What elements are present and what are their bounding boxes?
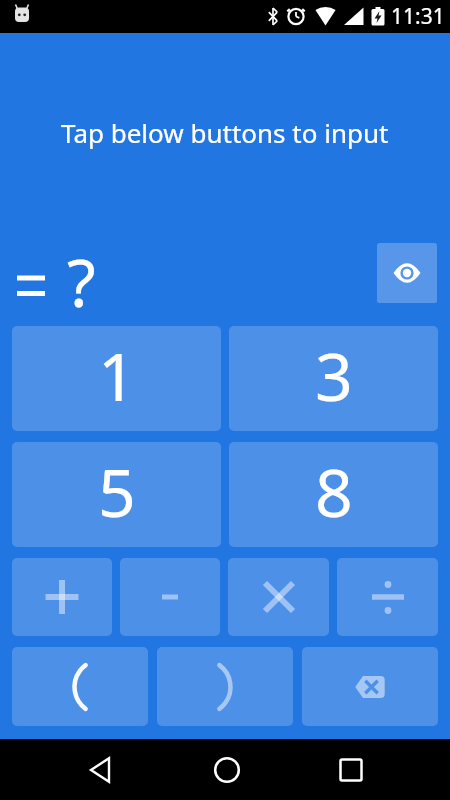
- button[interactable]: [12, 558, 112, 636]
- staticText: 11:31: [391, 2, 445, 31]
- button[interactable]: [120, 558, 220, 636]
- button[interactable]: [302, 647, 438, 726]
- button[interactable]: [337, 558, 438, 636]
- staticText: 8: [315, 446, 353, 536]
- button[interactable]: [157, 647, 293, 726]
- button[interactable]: [76, 746, 124, 794]
- button[interactable]: 8: [229, 442, 438, 547]
- button[interactable]: 5: [12, 442, 221, 547]
- staticText: ?: [67, 236, 96, 326]
- staticText: 1: [98, 330, 136, 420]
- staticText: 5: [98, 446, 136, 536]
- button[interactable]: [12, 647, 148, 726]
- button[interactable]: [377, 243, 437, 303]
- button[interactable]: 1: [12, 326, 221, 431]
- staticText: Tap below buttons to input: [61, 115, 389, 150]
- button[interactable]: [203, 746, 251, 794]
- button[interactable]: 3: [229, 326, 438, 431]
- staticText: 3: [315, 330, 353, 420]
- button[interactable]: [228, 558, 329, 636]
- button[interactable]: [327, 746, 375, 794]
